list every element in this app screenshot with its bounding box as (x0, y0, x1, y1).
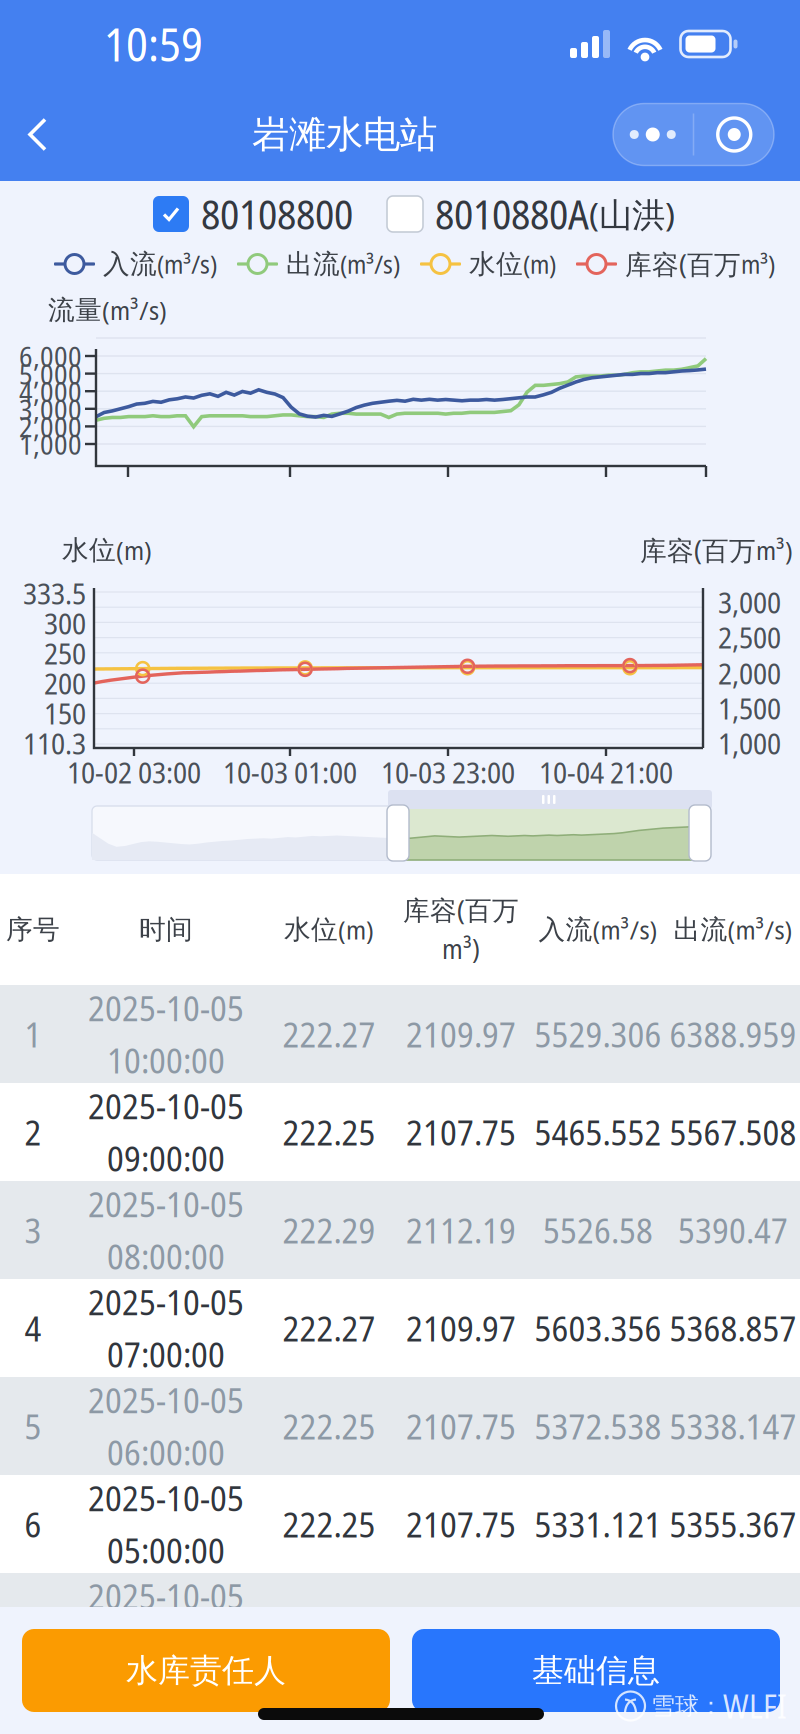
staticText: 222.25 (282, 1402, 375, 1450)
staticText: WLFI (723, 1684, 787, 1728)
staticText: (m) (523, 247, 556, 281)
staticText: 80108800 (201, 187, 353, 241)
staticText: 水库责任人 (126, 1651, 286, 1690)
staticText: 2025-10-05 (88, 1082, 244, 1129)
staticText: 水位 (469, 248, 523, 280)
staticText: 09:00:00 (107, 1134, 225, 1182)
staticText: 10-03 23:00 (381, 752, 515, 792)
staticText: 5368.857 (669, 1304, 796, 1352)
staticText: 222.27 (282, 1304, 375, 1352)
staticText: 2 (24, 1108, 41, 1156)
staticText: 5108.334 (534, 1598, 661, 1646)
staticText: 库容(百万 (625, 246, 741, 282)
staticText: 时间 (139, 913, 193, 946)
staticText: 222.25 (282, 1108, 375, 1156)
staticText: (m³/s) (102, 292, 167, 328)
staticText: 6 (24, 1500, 41, 1548)
staticText: 3 (24, 1206, 41, 1254)
staticText: 2025-10-05 (88, 1376, 244, 1423)
staticText: 10:00:00 (107, 1036, 225, 1084)
staticText: 222.27 (282, 1010, 375, 1058)
staticText: 2025-10-05 (88, 984, 244, 1031)
staticText: 入流 (103, 248, 157, 280)
staticText: 5,000 (19, 354, 82, 393)
staticText: 08:00:00 (107, 1232, 225, 1280)
staticText: 库容(百万 (403, 892, 519, 927)
staticText: 7 (24, 1598, 41, 1646)
staticText: 2,500 (718, 617, 781, 657)
staticText: 1,500 (718, 688, 781, 728)
staticText: (m) (338, 912, 374, 947)
staticText: 2025-10-05 (88, 1572, 244, 1619)
staticText: 2025-10-05 (88, 1278, 244, 1325)
staticText: 基础信息 (532, 1651, 660, 1690)
staticText: 10:59 (104, 13, 203, 75)
staticText: 04:00:00 (107, 1624, 225, 1672)
staticText: (m³/s) (157, 247, 217, 281)
staticText: 3,000 (19, 390, 82, 428)
staticText: 333.5 (23, 573, 86, 613)
staticText: 10-02 03:00 (67, 752, 201, 792)
staticText: 2107.75 (406, 1500, 516, 1548)
staticText: 2107.75 (406, 1402, 516, 1450)
staticText: 5372.538 (534, 1402, 661, 1450)
staticText: 2109.97 (406, 1010, 516, 1058)
staticText: 5390.47 (678, 1206, 788, 1254)
staticText: 2025-10-05 (88, 1474, 244, 1521)
staticText: 6388.959 (669, 1010, 796, 1058)
staticText: 入流 (538, 913, 592, 946)
staticText: 1,000 (19, 425, 82, 463)
staticText: 06:00:00 (107, 1428, 225, 1476)
button[interactable]: 基础信息 (412, 1629, 780, 1712)
staticText: 5338.147 (669, 1402, 796, 1450)
staticText: 200 (44, 663, 86, 703)
staticText: 5567.508 (669, 1108, 796, 1156)
staticText: 222.25 (282, 1500, 375, 1548)
staticText: 07:00:00 (107, 1330, 225, 1378)
staticText: 2109.97 (406, 1304, 516, 1352)
staticText: 8010880A (435, 187, 589, 241)
staticText: 1,000 (718, 723, 781, 763)
staticText: (m³/s) (592, 912, 657, 947)
staticText: 222.13 (282, 1598, 375, 1646)
staticText: 10-03 01:00 (223, 752, 357, 792)
staticText: 5603.356 (534, 1304, 661, 1352)
staticText: 5465.552 (534, 1108, 661, 1156)
staticText: 5355.367 (669, 1500, 796, 1548)
button[interactable]: Back (0, 88, 76, 181)
staticText: 5526.58 (543, 1206, 653, 1254)
staticText: 6,000 (19, 337, 82, 375)
staticText: 5271.141 (669, 1598, 796, 1646)
button[interactable]: 8010880A (387, 187, 675, 241)
staticText: 2096.36 (406, 1598, 516, 1646)
staticText: 10-04 21:00 (539, 752, 673, 792)
staticText: 222.29 (282, 1206, 375, 1254)
button[interactable]: More options (613, 103, 774, 165)
button[interactable]: 水库责任人 (22, 1629, 390, 1712)
staticText: 出流 (673, 913, 727, 946)
staticText: m³) (741, 247, 775, 281)
staticText: 5331.121 (534, 1500, 661, 1548)
staticText: m³) (756, 532, 793, 568)
staticText: (m³/s) (340, 247, 400, 281)
staticText: 水位 (62, 534, 116, 566)
staticText: 2,000 (718, 653, 781, 693)
staticText: 2,000 (19, 407, 82, 445)
staticText: 序号 (6, 913, 60, 946)
staticText: (山洪) (589, 192, 675, 236)
staticText: m³) (442, 930, 480, 967)
staticText: 2112.19 (406, 1206, 516, 1254)
staticText: 05:00:00 (107, 1526, 225, 1574)
staticText: 4,000 (19, 372, 82, 410)
staticText: 250 (44, 633, 86, 673)
staticText: 150 (44, 693, 86, 733)
staticText: 水位 (284, 913, 338, 946)
button[interactable]: 80108800 (153, 187, 353, 241)
staticText: 5529.306 (534, 1010, 661, 1058)
staticText: 出流 (286, 248, 340, 280)
staticText: 岩滩水电站 (252, 112, 437, 157)
staticText: (m³/s) (727, 912, 792, 947)
staticText: 4 (24, 1304, 41, 1352)
staticText: (m) (116, 532, 152, 568)
staticText: 300 (44, 603, 86, 643)
